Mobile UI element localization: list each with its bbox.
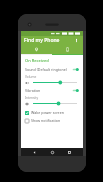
- button[interactable]: Intensity: [25, 96, 79, 106]
- staticText: Intensity: [25, 96, 39, 100]
- button[interactable]: Settings tab: [52, 45, 83, 54]
- button[interactable]: Sound (Default ringtone): [25, 66, 79, 73]
- button[interactable]: Volume: [25, 75, 79, 85]
- button[interactable]: More options: [73, 37, 80, 44]
- staticText: On Received: [25, 58, 49, 63]
- button[interactable]: Show notification: [25, 117, 79, 124]
- staticText: Find my Phone: [24, 37, 60, 44]
- staticText: Show notification: [31, 118, 61, 123]
- button[interactable]: Wake power screen: [25, 109, 79, 116]
- staticText: Wake power screen: [31, 110, 64, 115]
- button[interactable]: Home: [49, 149, 56, 156]
- button[interactable]: Find my Phone: [21, 36, 83, 45]
- staticText: Volume: [25, 75, 37, 79]
- button[interactable]: Vibration: [25, 87, 79, 94]
- button[interactable]: Recent apps: [66, 149, 73, 156]
- button[interactable]: Back: [31, 149, 38, 156]
- button[interactable]: Find tab: [21, 45, 52, 54]
- staticText: Sound (Default ringtone): [25, 67, 72, 72]
- staticText: Vibration: [25, 88, 72, 93]
